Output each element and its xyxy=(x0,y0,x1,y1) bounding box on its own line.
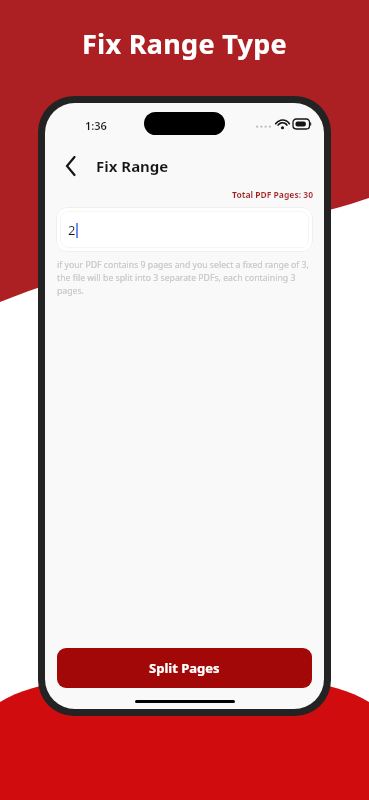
staticText: Split Pages xyxy=(149,659,220,677)
staticText: if your PDF contains 9 pages and you sel… xyxy=(57,259,312,297)
button[interactable]: Split Pages xyxy=(57,648,312,688)
button[interactable]: Back xyxy=(56,151,86,181)
staticText: Fix Range xyxy=(96,156,169,176)
staticText: Total PDF Pages: 30 xyxy=(45,189,313,201)
button[interactable]: 2 xyxy=(56,207,313,252)
staticText: 1:36 xyxy=(85,118,107,133)
staticText: 2 xyxy=(68,221,76,239)
staticText: Fix Range Type xyxy=(0,25,369,62)
